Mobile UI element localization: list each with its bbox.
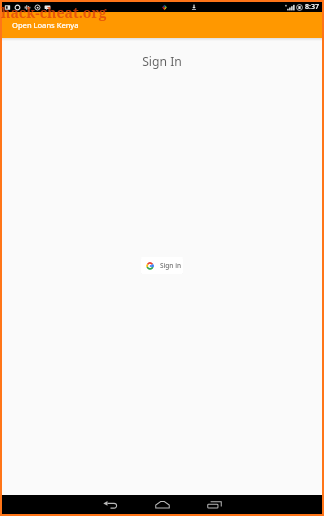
button[interactable]: Sign in: [141, 257, 183, 274]
button[interactable]: Home: [140, 497, 184, 514]
staticText: 8:37: [305, 2, 319, 12]
staticText: hack-cheat.org: [1, 3, 107, 22]
staticText: Sign in: [160, 261, 181, 270]
staticText: Open Loans Kenya: [12, 20, 79, 30]
button[interactable]: Recent apps: [192, 497, 236, 514]
button[interactable]: Back: [88, 497, 132, 514]
staticText: Sign In: [2, 53, 322, 70]
